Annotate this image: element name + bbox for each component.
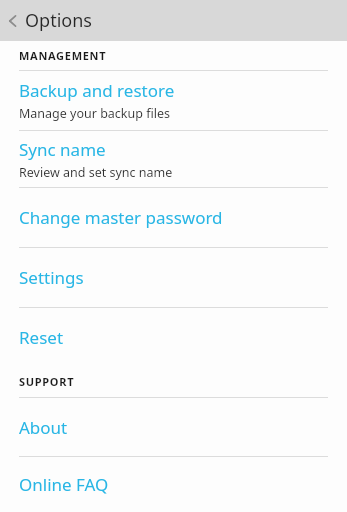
- staticText: Review and set sync name: [19, 164, 173, 181]
- button[interactable]: Reset: [0, 308, 347, 366]
- staticText: Settings: [19, 266, 84, 289]
- staticText: Options: [25, 8, 92, 33]
- button[interactable]: Backup and restore: [0, 71, 347, 130]
- staticText: Change master password: [19, 206, 223, 229]
- staticText: Manage your backup files: [19, 105, 170, 122]
- button[interactable]: Sync name: [0, 131, 347, 187]
- staticText: Backup and restore: [19, 79, 175, 102]
- staticText: Reset: [19, 326, 64, 349]
- button[interactable]: Back: [0, 0, 25, 41]
- button[interactable]: Change master password: [0, 188, 347, 247]
- staticText: Online FAQ: [19, 473, 109, 496]
- staticText: Sync name: [19, 138, 106, 161]
- button[interactable]: About: [0, 398, 347, 456]
- staticText: MANAGEMENT: [19, 48, 107, 63]
- button[interactable]: Settings: [0, 248, 347, 307]
- staticText: About: [19, 416, 68, 439]
- staticText: SUPPORT: [19, 374, 75, 389]
- button[interactable]: Online FAQ: [0, 457, 347, 512]
